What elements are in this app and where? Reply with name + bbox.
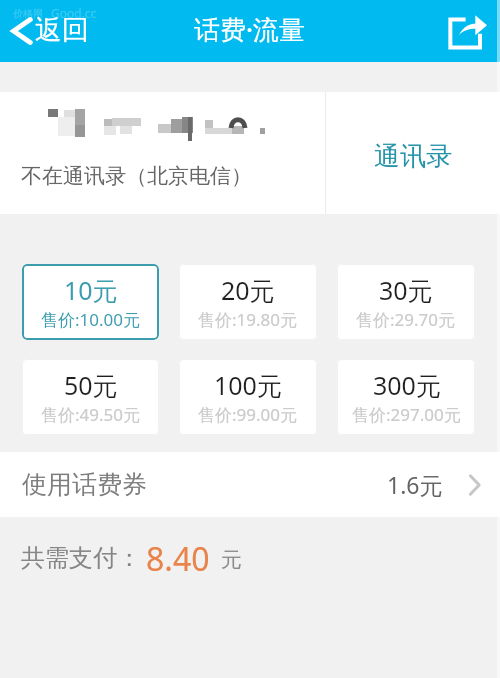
staticText: 返回: [35, 13, 89, 47]
staticText: 10元: [64, 273, 118, 307]
staticText: 30元: [379, 273, 433, 307]
button[interactable]: 300元: [337, 359, 475, 435]
staticText: Good.cc: [51, 5, 97, 21]
staticText: 售价:99.00元: [198, 403, 298, 426]
button[interactable]: 20元: [179, 264, 317, 340]
staticText: 元: [221, 547, 242, 573]
staticText: 共需支付：: [21, 543, 141, 573]
button[interactable]: 10元: [22, 264, 159, 340]
staticText: 不在通讯录（北京电信）: [21, 163, 252, 189]
staticText: 售价:297.00元: [352, 403, 461, 426]
staticText: 50元: [64, 368, 118, 402]
button[interactable]: 返回: [0, 0, 101, 62]
button[interactable]: 使用话费券: [0, 452, 500, 517]
button[interactable]: 30元: [337, 264, 475, 340]
button[interactable]: 通讯录: [326, 92, 500, 214]
button[interactable]: 不在通讯录（北京电信）: [0, 92, 325, 214]
button[interactable]: 100元: [179, 359, 317, 435]
button[interactable]: Share: [430, 0, 500, 62]
staticText: 100元: [214, 368, 282, 402]
staticText: 8.40: [146, 537, 210, 581]
staticText: 20元: [221, 273, 275, 307]
staticText: 300元: [373, 368, 441, 402]
staticText: 使用话费券: [22, 469, 147, 500]
staticText: 售价:29.70元: [356, 308, 456, 331]
staticText: 售价:49.50元: [41, 403, 141, 426]
button[interactable]: 50元: [22, 359, 159, 435]
staticText: 话费·流量: [194, 11, 306, 47]
staticText: 价格网: [13, 7, 43, 20]
staticText: 1.6元: [387, 469, 443, 500]
staticText: 售价:19.80元: [198, 308, 298, 331]
staticText: 售价:10.00元: [41, 308, 141, 331]
staticText: 通讯录: [374, 140, 452, 173]
